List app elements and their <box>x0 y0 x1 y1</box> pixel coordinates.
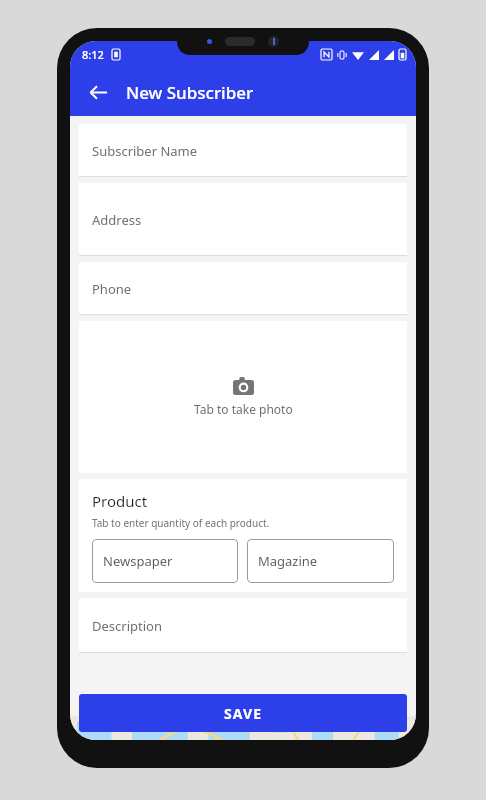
button[interactable]: Description <box>79 598 407 653</box>
button[interactable]: Back <box>78 72 118 112</box>
button[interactable]: Address <box>79 183 407 256</box>
button[interactable]: Newspaper <box>92 539 238 583</box>
staticText: 8:12 <box>82 47 104 62</box>
button[interactable]: Magazine <box>247 539 394 583</box>
staticText: SAVE <box>224 704 263 723</box>
staticText: Tab to enter quantity of each product. <box>92 516 270 530</box>
staticText: Tab to take photo <box>194 401 293 417</box>
staticText: Magazine <box>258 552 318 570</box>
button[interactable]: SAVE <box>79 694 407 732</box>
staticText: Product <box>92 491 148 511</box>
staticText: Description <box>92 617 162 635</box>
button[interactable]: Tab to take photo <box>79 321 407 473</box>
staticText: Phone <box>92 280 132 298</box>
staticText: Subscriber Name <box>92 142 198 160</box>
button[interactable]: Subscriber Name <box>79 124 407 177</box>
button[interactable]: Phone <box>79 262 407 315</box>
staticText: New Subscriber <box>126 81 254 104</box>
staticText: Address <box>92 211 142 229</box>
staticText: Newspaper <box>103 552 173 570</box>
